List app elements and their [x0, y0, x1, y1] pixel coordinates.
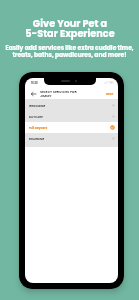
staticText: 10:28	[31, 81, 38, 85]
staticText: Give Your Pet a 5-Star Experience	[25, 17, 115, 40]
staticText: DAYCARE	[29, 115, 43, 119]
staticText: BOARDING	[29, 137, 45, 141]
button[interactable]: Back	[29, 90, 37, 98]
staticText: Full Daycare	[29, 126, 48, 130]
button[interactable]: Full Daycare	[25, 122, 118, 133]
button[interactable]: NEXT	[106, 92, 114, 96]
button[interactable]: DAYCARE	[25, 111, 118, 122]
button[interactable]: BOARDING	[25, 133, 118, 144]
staticText: GROOMING	[29, 104, 46, 108]
staticText: Easily add services like extra cuddle ti…	[5, 44, 134, 59]
staticText: SELECT SERVICES FOR JIMMY	[40, 89, 77, 98]
button[interactable]: GROOMING	[25, 100, 118, 111]
